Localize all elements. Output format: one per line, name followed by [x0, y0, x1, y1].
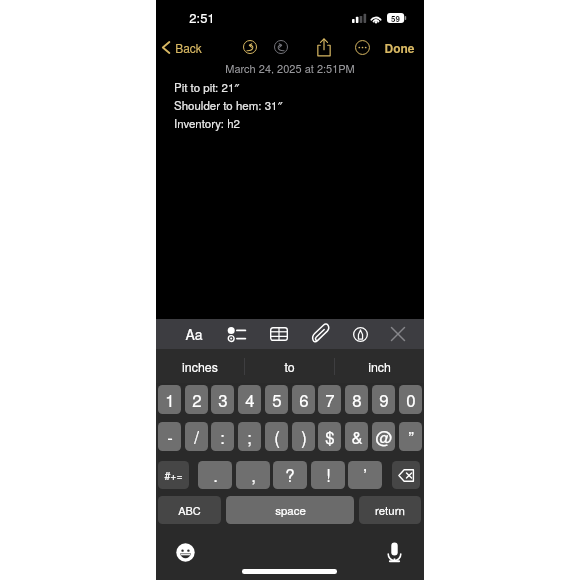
staticText: to [284, 358, 295, 376]
button[interactable]: inches [156, 349, 244, 384]
staticText: 3 [218, 388, 228, 412]
button[interactable]: 0 [399, 385, 422, 414]
staticText: 9 [379, 388, 389, 412]
button[interactable]: Share [313, 36, 335, 58]
button[interactable]: inch [335, 349, 424, 384]
button[interactable]: to [245, 349, 334, 384]
button[interactable]: Markup [342, 321, 378, 347]
staticText: 7 [325, 388, 335, 412]
button[interactable]: - [158, 422, 181, 451]
button[interactable]: Done [380, 36, 418, 58]
button[interactable]: ; [238, 422, 261, 451]
staticText: ABC [178, 502, 201, 518]
button[interactable]: $ [318, 422, 341, 451]
button[interactable]: & [345, 422, 368, 451]
staticText: / [194, 425, 199, 449]
staticText: , [251, 463, 256, 487]
button[interactable]: Back [162, 36, 202, 58]
button[interactable]: ? [273, 461, 307, 489]
button[interactable]: #+= [158, 461, 189, 489]
staticText: . [213, 463, 218, 487]
button[interactable]: 3 [211, 385, 234, 414]
staticText: March 24, 2025 at 2:51PM [225, 60, 355, 74]
button[interactable]: Table [261, 321, 297, 347]
button[interactable]: Attach [302, 321, 338, 347]
button[interactable]: 7 [318, 385, 341, 414]
button[interactable]: Aa [176, 321, 212, 347]
staticText: 1 [165, 388, 175, 412]
button[interactable]: ’ [348, 461, 382, 489]
button[interactable]: More options [355, 40, 370, 55]
button[interactable]: Emoji [176, 543, 195, 562]
staticText: ” [408, 425, 414, 449]
button[interactable]: 2 [185, 385, 208, 414]
staticText: 5 [272, 388, 282, 412]
button[interactable]: / [185, 422, 208, 451]
button[interactable]: : [211, 422, 234, 451]
staticText: Aa [185, 324, 203, 344]
button[interactable]: 8 [345, 385, 368, 414]
button[interactable]: ) [292, 422, 315, 451]
staticText: return [375, 502, 405, 518]
staticText: ! [326, 463, 331, 487]
button[interactable]: Dictation [386, 542, 403, 563]
staticText: ) [301, 425, 307, 449]
staticText: 59 [391, 13, 400, 23]
button[interactable]: Redo [274, 40, 288, 54]
staticText: inches [182, 358, 218, 376]
button[interactable]: 6 [292, 385, 315, 414]
staticText: : [220, 425, 225, 449]
staticText: 4 [245, 388, 255, 412]
staticText: Done [384, 39, 415, 56]
staticText: 6 [299, 388, 309, 412]
button[interactable]: ” [399, 422, 422, 451]
staticText: ; [247, 425, 252, 449]
staticText: @ [375, 425, 393, 449]
button[interactable]: ABC [158, 496, 221, 524]
staticText: 2 [192, 388, 202, 412]
staticText: ( [274, 425, 280, 449]
other: Table [270, 327, 288, 341]
button[interactable]: 5 [265, 385, 288, 414]
staticText: #+= [164, 468, 183, 483]
staticText: inch [368, 358, 391, 376]
staticText: ’ [363, 463, 367, 487]
button[interactable]: . [198, 461, 232, 489]
other: Attach [313, 326, 327, 343]
button[interactable]: ! [311, 461, 345, 489]
staticText: $ [325, 425, 335, 449]
other: Close [391, 327, 405, 341]
button[interactable]: 4 [238, 385, 261, 414]
button[interactable]: space [226, 496, 354, 524]
staticText: 8 [352, 388, 362, 412]
other: Markup [353, 327, 368, 342]
staticText: & [351, 425, 363, 449]
staticText: Back [175, 39, 202, 56]
button[interactable]: , [236, 461, 270, 489]
staticText: 0 [406, 388, 416, 412]
button[interactable]: 9 [372, 385, 395, 414]
button[interactable]: ( [265, 422, 288, 451]
button[interactable]: Checklist [218, 321, 254, 347]
button[interactable]: return [359, 496, 421, 524]
staticText: - [167, 425, 173, 449]
staticText: space [275, 502, 306, 518]
staticText: 2:51 [189, 8, 215, 24]
button[interactable]: Delete [392, 461, 420, 489]
button[interactable]: @ [372, 422, 395, 451]
staticText: Pit to pit: 21″ Shoulder to hem: 31″ Inv… [174, 79, 283, 131]
button[interactable]: Undo [243, 40, 257, 54]
staticText: ? [285, 463, 295, 487]
button[interactable]: Close [380, 321, 416, 347]
other: Checklist [227, 327, 246, 342]
button[interactable]: 1 [158, 385, 181, 414]
